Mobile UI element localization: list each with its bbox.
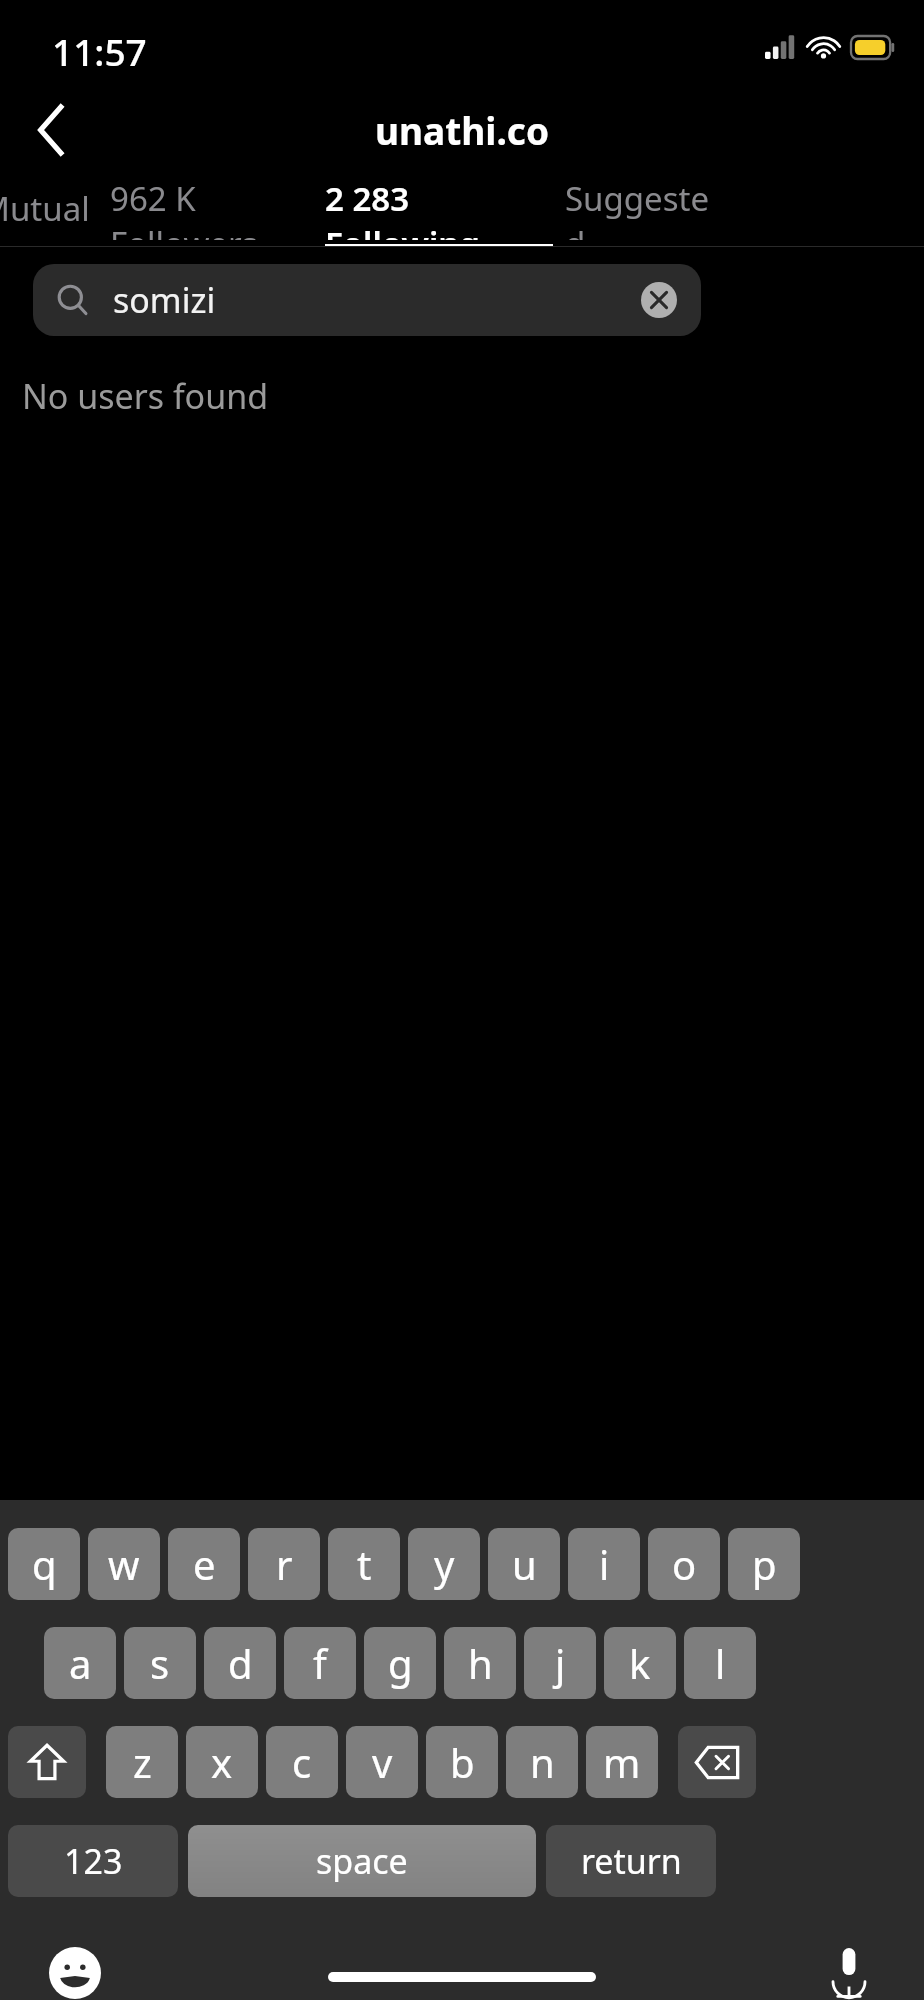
button[interactable]: x	[186, 1726, 258, 1798]
staticText: v	[372, 1735, 393, 1789]
staticText: d	[228, 1636, 253, 1690]
staticText: 962 K Followers	[110, 176, 303, 240]
button[interactable]: u	[488, 1528, 560, 1600]
button[interactable]: 2 283 Following	[325, 176, 550, 240]
button[interactable]: somizi	[33, 264, 701, 336]
staticText: i	[599, 1537, 610, 1591]
staticText: y	[434, 1537, 455, 1591]
button[interactable]: z	[106, 1726, 178, 1798]
button[interactable]: Shift	[8, 1726, 86, 1798]
button[interactable]: q	[8, 1528, 80, 1600]
button[interactable]: t	[328, 1528, 400, 1600]
button[interactable]: j	[524, 1627, 596, 1699]
button[interactable]: Backspace	[678, 1726, 756, 1798]
staticText: a	[69, 1636, 92, 1690]
staticText: w	[108, 1537, 140, 1591]
button[interactable]: r	[248, 1528, 320, 1600]
staticText: 2 283 Following	[325, 176, 550, 240]
staticText: somizi	[113, 277, 216, 323]
staticText: r	[276, 1537, 293, 1591]
staticText: 123	[64, 1838, 123, 1884]
button[interactable]: y	[408, 1528, 480, 1600]
staticText: u	[512, 1537, 537, 1591]
button[interactable]: a	[44, 1627, 116, 1699]
button[interactable]: i	[568, 1528, 640, 1600]
button[interactable]: m	[586, 1726, 658, 1798]
staticText: l	[715, 1636, 726, 1690]
button[interactable]: b	[426, 1726, 498, 1798]
button[interactable]: return	[546, 1825, 716, 1897]
button[interactable]: n	[506, 1726, 578, 1798]
staticText: Mutual	[0, 186, 90, 231]
button[interactable]: w	[88, 1528, 160, 1600]
staticText: 11:57	[52, 26, 147, 76]
staticText: q	[32, 1537, 57, 1591]
staticText: e	[193, 1537, 216, 1591]
staticText: p	[752, 1537, 777, 1591]
button[interactable]: c	[266, 1726, 338, 1798]
staticText: unathi.co	[0, 105, 924, 155]
button[interactable]: Emoji	[42, 1940, 108, 2000]
staticText: n	[530, 1735, 555, 1789]
button[interactable]: p	[728, 1528, 800, 1600]
button[interactable]: e	[168, 1528, 240, 1600]
button[interactable]: v	[346, 1726, 418, 1798]
button[interactable]: Clear search	[639, 280, 679, 320]
staticText: j	[555, 1636, 566, 1690]
button[interactable]: o	[648, 1528, 720, 1600]
staticText: t	[357, 1537, 372, 1591]
staticText: z	[133, 1735, 152, 1789]
staticText: space	[316, 1838, 408, 1884]
button[interactable]: Back	[14, 93, 88, 167]
button[interactable]: s	[124, 1627, 196, 1699]
staticText: Suggested	[565, 176, 725, 240]
button[interactable]: g	[364, 1627, 436, 1699]
staticText: f	[313, 1636, 327, 1690]
staticText: g	[388, 1636, 413, 1690]
staticText: s	[150, 1636, 170, 1690]
button[interactable]: Mutual	[0, 176, 110, 240]
staticText: m	[603, 1735, 641, 1789]
staticText: o	[672, 1537, 697, 1591]
staticText: c	[292, 1735, 312, 1789]
button[interactable]: f	[284, 1627, 356, 1699]
button[interactable]: space	[188, 1825, 536, 1897]
staticText: b	[450, 1735, 475, 1789]
staticText: return	[581, 1838, 682, 1884]
button[interactable]: l	[684, 1627, 756, 1699]
button[interactable]: 962 K Followers	[110, 176, 303, 240]
staticText: k	[629, 1636, 651, 1690]
button[interactable]: k	[604, 1627, 676, 1699]
button[interactable]: 123	[8, 1825, 178, 1897]
staticText: h	[468, 1636, 493, 1690]
button[interactable]: Suggested	[565, 176, 725, 240]
staticText: No users found	[22, 373, 269, 419]
button[interactable]: h	[444, 1627, 516, 1699]
button[interactable]: d	[204, 1627, 276, 1699]
button[interactable]: Voice input	[816, 1940, 882, 2000]
staticText: x	[211, 1735, 233, 1789]
